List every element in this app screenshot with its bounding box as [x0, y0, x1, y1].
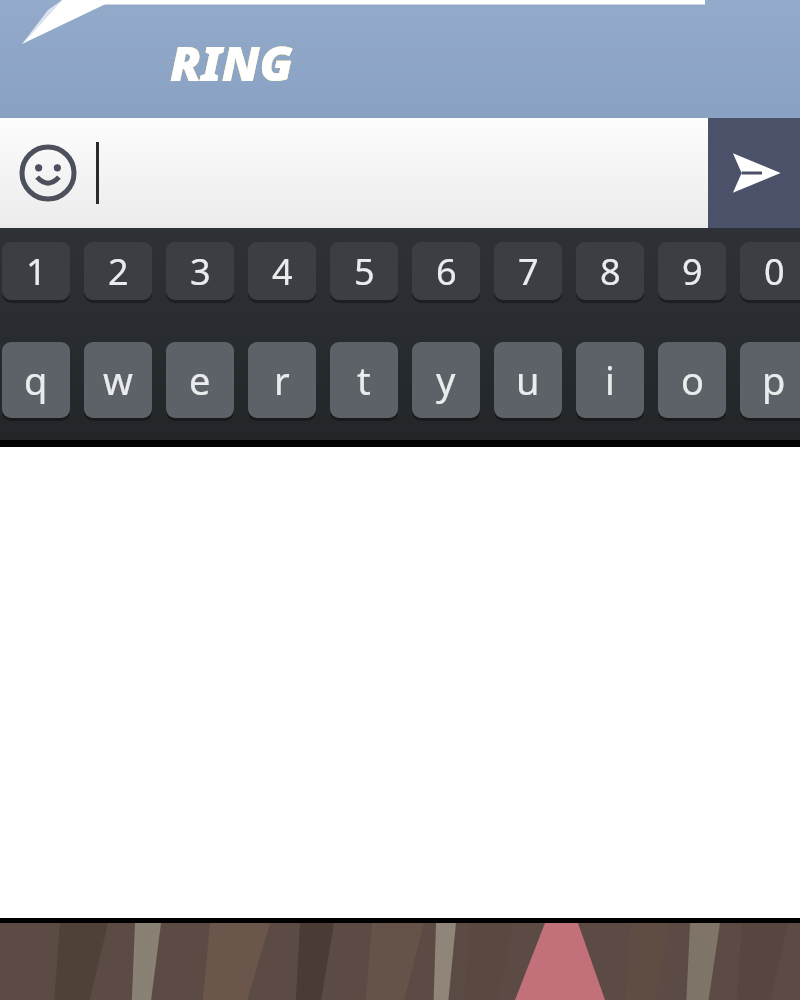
button[interactable]: 9 [658, 242, 726, 300]
staticText: i [605, 354, 615, 406]
button[interactable]: o [658, 342, 726, 418]
button[interactable]: u [494, 342, 562, 418]
button[interactable]: Insert emoji [0, 118, 708, 228]
button[interactable]: 6 [412, 242, 480, 300]
button[interactable]: t [330, 342, 398, 418]
staticText: 2 [108, 247, 129, 296]
staticText: 3 [190, 247, 211, 296]
button[interactable]: p [740, 342, 800, 418]
button[interactable]: 0 [740, 242, 800, 300]
button[interactable]: e [166, 342, 234, 418]
staticText: RING [170, 30, 294, 95]
staticText: y [436, 354, 456, 406]
staticText: e [189, 354, 211, 406]
button[interactable]: Send [708, 118, 800, 228]
staticText: t [357, 354, 371, 406]
button[interactable]: 2 [84, 242, 152, 300]
staticText: 9 [682, 247, 703, 296]
button[interactable]: 3 [166, 242, 234, 300]
staticText: o [681, 354, 704, 406]
staticText: u [516, 354, 540, 406]
staticText: 5 [354, 247, 375, 296]
staticText: p [762, 354, 786, 406]
button[interactable]: Insert emoji [0, 125, 96, 221]
staticText: RING [170, 30, 294, 95]
button[interactable]: y [412, 342, 480, 418]
staticText: q [24, 354, 48, 406]
staticText: 4 [272, 247, 293, 296]
staticText: 0 [764, 247, 785, 296]
button[interactable]: w [84, 342, 152, 418]
staticText: r [274, 354, 290, 406]
button[interactable]: 5 [330, 242, 398, 300]
button[interactable]: 8 [576, 242, 644, 300]
staticText: RING [170, 30, 294, 95]
staticText: w [103, 354, 133, 406]
button[interactable]: i [576, 342, 644, 418]
staticText: 1 [26, 247, 47, 296]
staticText: 8 [600, 247, 621, 296]
staticText: 6 [436, 247, 457, 296]
staticText: 7 [518, 247, 539, 296]
staticText: RING [170, 30, 294, 95]
button[interactable]: 4 [248, 242, 316, 300]
button[interactable]: 1 [2, 242, 70, 300]
button[interactable]: r [248, 342, 316, 418]
button[interactable]: 7 [494, 242, 562, 300]
button[interactable]: q [2, 342, 70, 418]
